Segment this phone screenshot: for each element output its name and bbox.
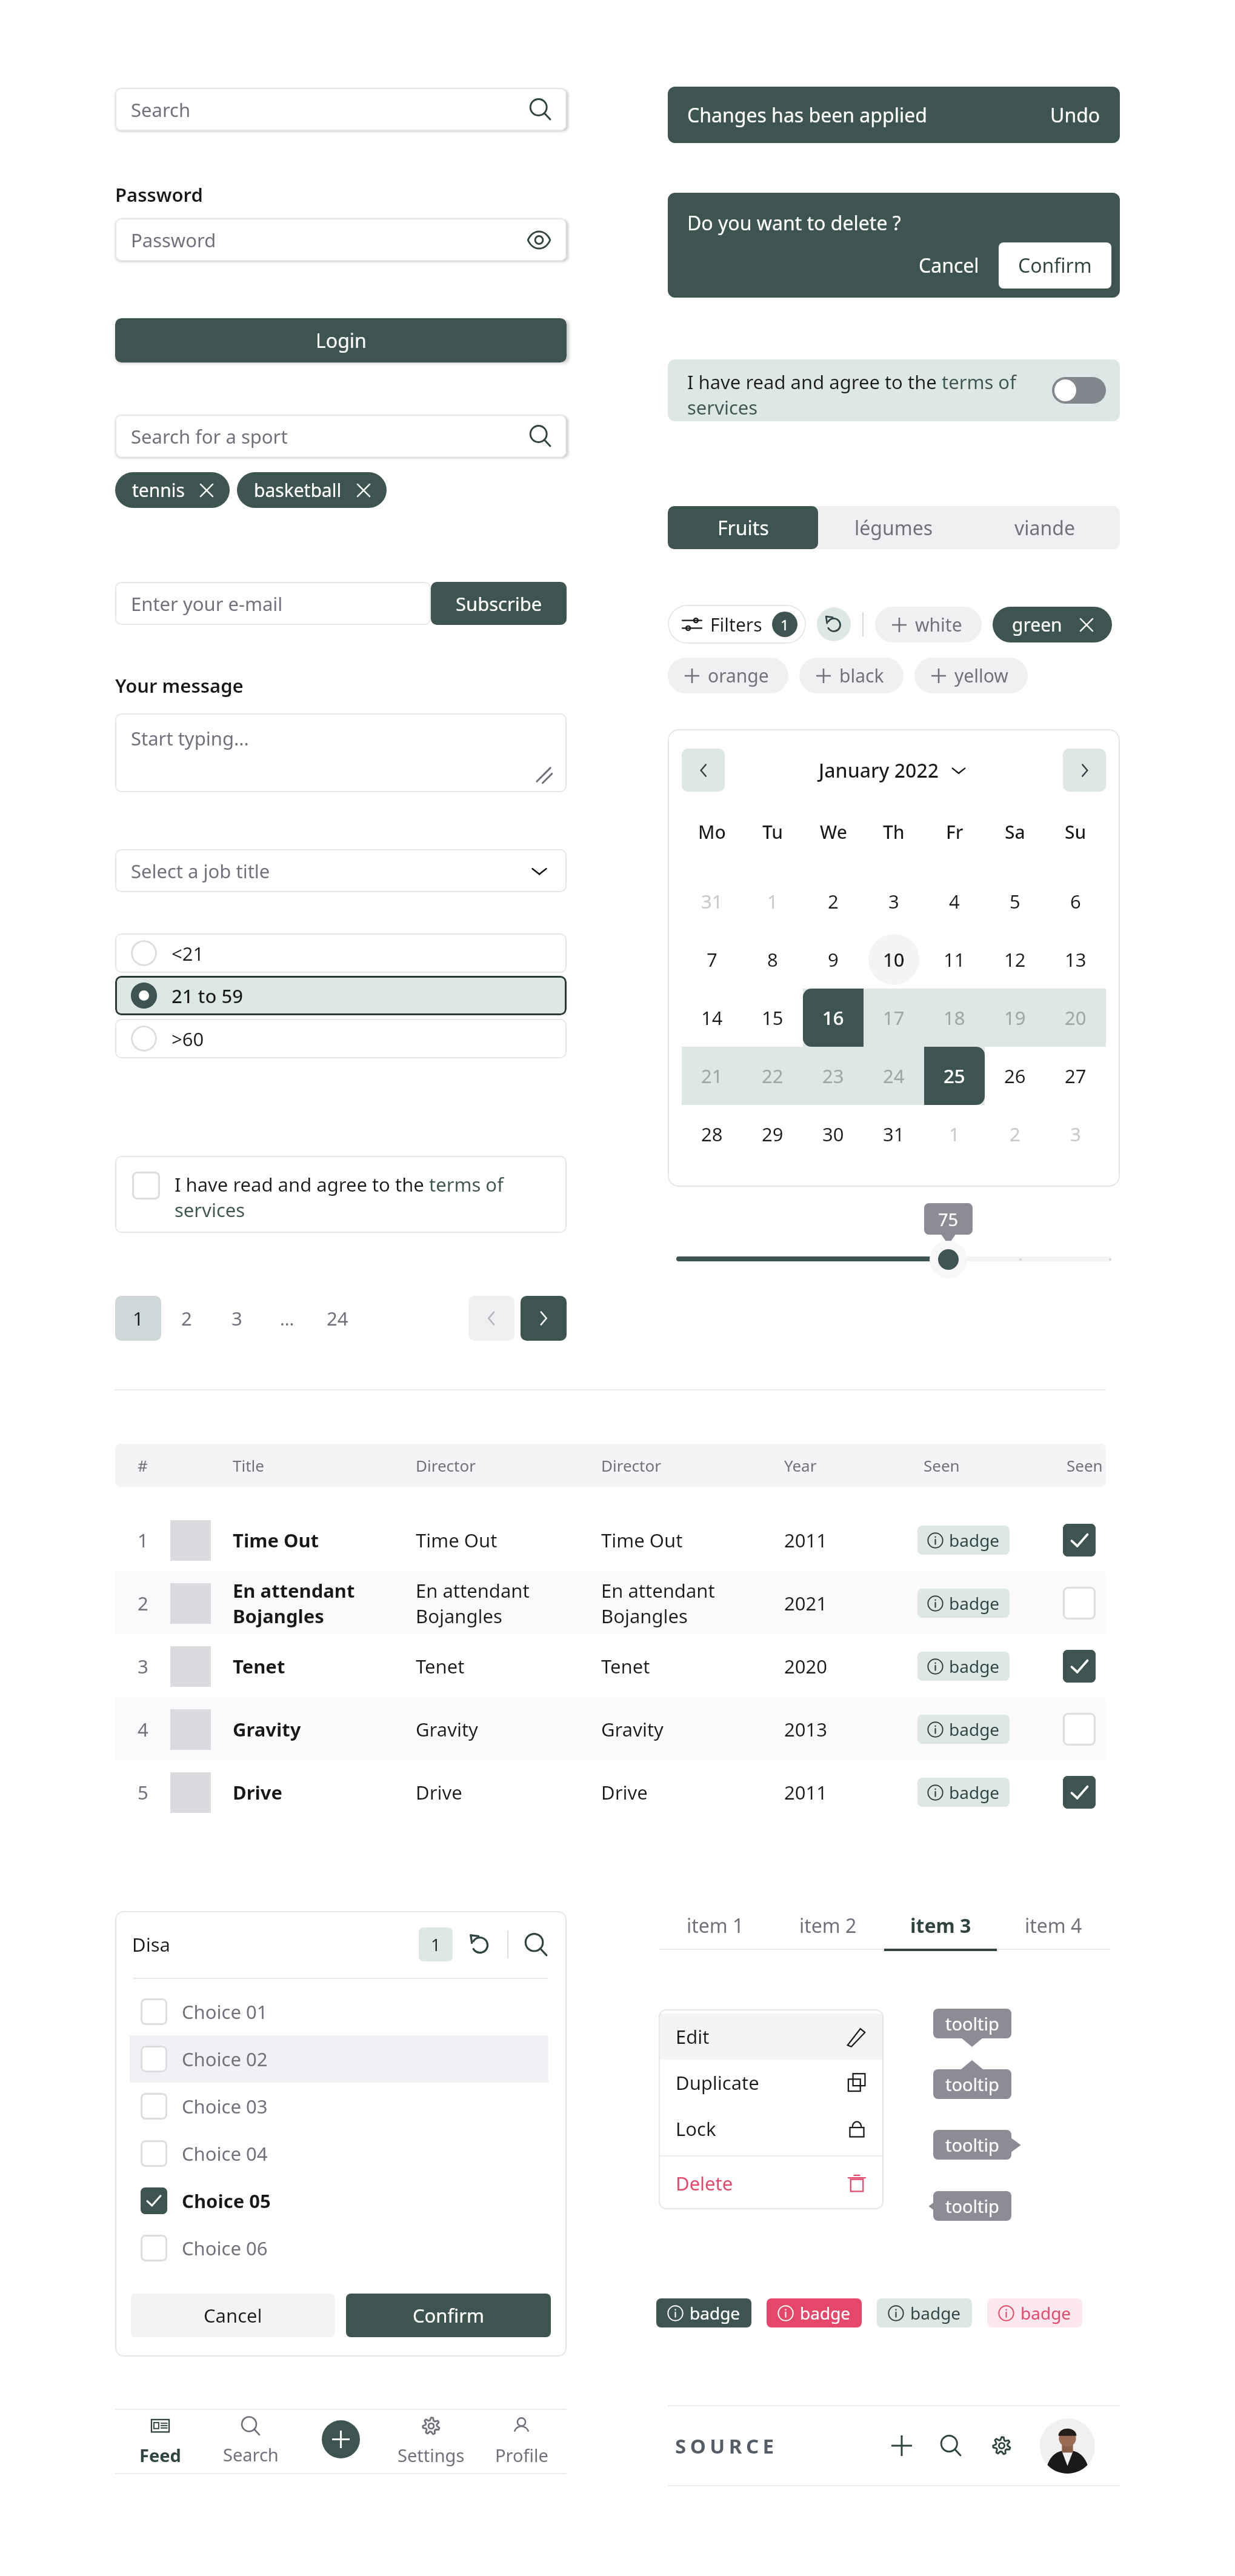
- button[interactable]: 16: [822, 1005, 844, 1030]
- button[interactable]: Password: [115, 218, 567, 261]
- button[interactable]: [1063, 1713, 1096, 1746]
- button[interactable]: 5: [1010, 889, 1020, 914]
- button[interactable]: 18: [944, 1005, 965, 1030]
- button[interactable]: 6: [1070, 889, 1081, 914]
- button[interactable]: orange: [668, 658, 788, 693]
- button[interactable]: 24: [883, 1063, 905, 1089]
- button[interactable]: 8: [767, 947, 778, 972]
- button[interactable]: 1: [115, 1509, 1106, 1572]
- button[interactable]: 22: [762, 1063, 784, 1089]
- button[interactable]: Filters: [668, 605, 806, 644]
- button[interactable]: [1063, 1524, 1096, 1557]
- button[interactable]: [1063, 1776, 1096, 1809]
- button[interactable]: item 1: [659, 1912, 771, 1951]
- button[interactable]: 13: [1065, 947, 1087, 972]
- button[interactable]: Search: [205, 2410, 296, 2473]
- button[interactable]: Enter your e-mail: [115, 582, 431, 625]
- button[interactable]: Settings: [386, 2410, 476, 2473]
- button[interactable]: 2: [1010, 1121, 1020, 1147]
- button[interactable]: 10: [883, 947, 905, 972]
- button[interactable]: 21: [701, 1063, 723, 1089]
- button[interactable]: 3: [888, 889, 899, 914]
- button[interactable]: Add: [884, 2428, 919, 2463]
- button[interactable]: Edit: [659, 2014, 884, 2060]
- button[interactable]: 4: [115, 1698, 1106, 1761]
- button[interactable]: Delete: [659, 2160, 884, 2206]
- button[interactable]: 26: [1004, 1063, 1026, 1089]
- button[interactable]: [1063, 1650, 1096, 1683]
- button[interactable]: badge: [987, 2298, 1082, 2327]
- button[interactable]: 3: [1070, 1121, 1081, 1147]
- button[interactable]: Start typing...: [115, 713, 567, 792]
- button[interactable]: Duplicate: [659, 2060, 884, 2106]
- button[interactable]: Settings: [984, 2428, 1019, 2463]
- button[interactable]: 24: [312, 1296, 362, 1341]
- button[interactable]: Confirm: [999, 242, 1111, 289]
- button[interactable]: [1063, 1587, 1096, 1620]
- button[interactable]: Confirm: [346, 2294, 551, 2337]
- button[interactable]: 12: [1004, 947, 1026, 972]
- button[interactable]: badge: [767, 2298, 862, 2327]
- button[interactable]: légumes: [818, 506, 969, 549]
- button[interactable]: Login: [115, 318, 567, 362]
- button[interactable]: 9: [828, 947, 839, 972]
- button[interactable]: 2: [115, 1572, 1106, 1635]
- button[interactable]: 27: [1065, 1063, 1087, 1089]
- button[interactable]: Search: [115, 88, 567, 131]
- button[interactable]: tennis: [115, 472, 230, 508]
- button[interactable]: black: [799, 658, 904, 693]
- button[interactable]: 25: [944, 1063, 965, 1089]
- button[interactable]: green: [993, 607, 1112, 642]
- button[interactable]: I have read and agree to the: [668, 359, 1120, 421]
- button[interactable]: 20: [1065, 1005, 1087, 1030]
- button[interactable]: item 4: [997, 1912, 1110, 1951]
- button[interactable]: Next page: [521, 1296, 567, 1341]
- button[interactable]: 17: [883, 1005, 905, 1030]
- button[interactable]: Choice 02: [130, 2035, 548, 2083]
- button[interactable]: Search: [933, 2428, 968, 2463]
- button[interactable]: Previous page: [468, 1296, 514, 1341]
- button[interactable]: 4: [949, 889, 960, 914]
- button[interactable]: Choice 06: [130, 2224, 548, 2272]
- button[interactable]: badge: [917, 1778, 1010, 1807]
- button[interactable]: Choice 03: [130, 2083, 548, 2130]
- button[interactable]: Slider handle value 75: [938, 1249, 959, 1270]
- button[interactable]: 1: [767, 889, 778, 914]
- button[interactable]: >60: [115, 1019, 567, 1058]
- button[interactable]: January 2022: [819, 757, 969, 784]
- button[interactable]: 3: [211, 1296, 262, 1341]
- button[interactable]: Cancel: [131, 2294, 335, 2337]
- button[interactable]: Profile: [476, 2410, 567, 2473]
- button[interactable]: badge: [877, 2298, 972, 2327]
- button[interactable]: 23: [822, 1063, 844, 1089]
- button[interactable]: basketball: [237, 472, 387, 508]
- button[interactable]: 2: [828, 889, 839, 914]
- button[interactable]: viande: [969, 506, 1120, 549]
- button[interactable]: Create new: [322, 2420, 360, 2458]
- button[interactable]: yellow: [914, 658, 1028, 693]
- button[interactable]: Next month: [1063, 749, 1106, 792]
- button[interactable]: Profile: [1040, 2418, 1095, 2474]
- button[interactable]: badge: [917, 1526, 1010, 1555]
- button[interactable]: 11: [944, 947, 965, 972]
- button[interactable]: 31: [883, 1121, 905, 1147]
- button[interactable]: item 2: [771, 1912, 884, 1951]
- button[interactable]: 3: [115, 1635, 1106, 1698]
- button[interactable]: Search choices: [522, 1930, 550, 1958]
- button[interactable]: Changes has been applied: [668, 87, 1120, 143]
- button[interactable]: Fruits: [668, 506, 818, 549]
- button[interactable]: Choice 01: [130, 1988, 548, 2035]
- button[interactable]: badge: [656, 2298, 751, 2327]
- button[interactable]: 29: [762, 1121, 784, 1147]
- button[interactable]: Toggle agree: [1052, 377, 1106, 404]
- button[interactable]: 19: [1004, 1005, 1026, 1030]
- button[interactable]: Feed: [115, 2410, 205, 2473]
- button[interactable]: I have read and agree to the: [115, 1156, 567, 1233]
- button[interactable]: 5: [115, 1761, 1106, 1824]
- button[interactable]: Lock: [659, 2106, 884, 2152]
- button[interactable]: 30: [822, 1121, 844, 1147]
- button[interactable]: badge: [917, 1652, 1010, 1681]
- button[interactable]: badge: [917, 1715, 1010, 1744]
- button[interactable]: 7: [707, 947, 717, 972]
- button[interactable]: item 3: [884, 1912, 997, 1951]
